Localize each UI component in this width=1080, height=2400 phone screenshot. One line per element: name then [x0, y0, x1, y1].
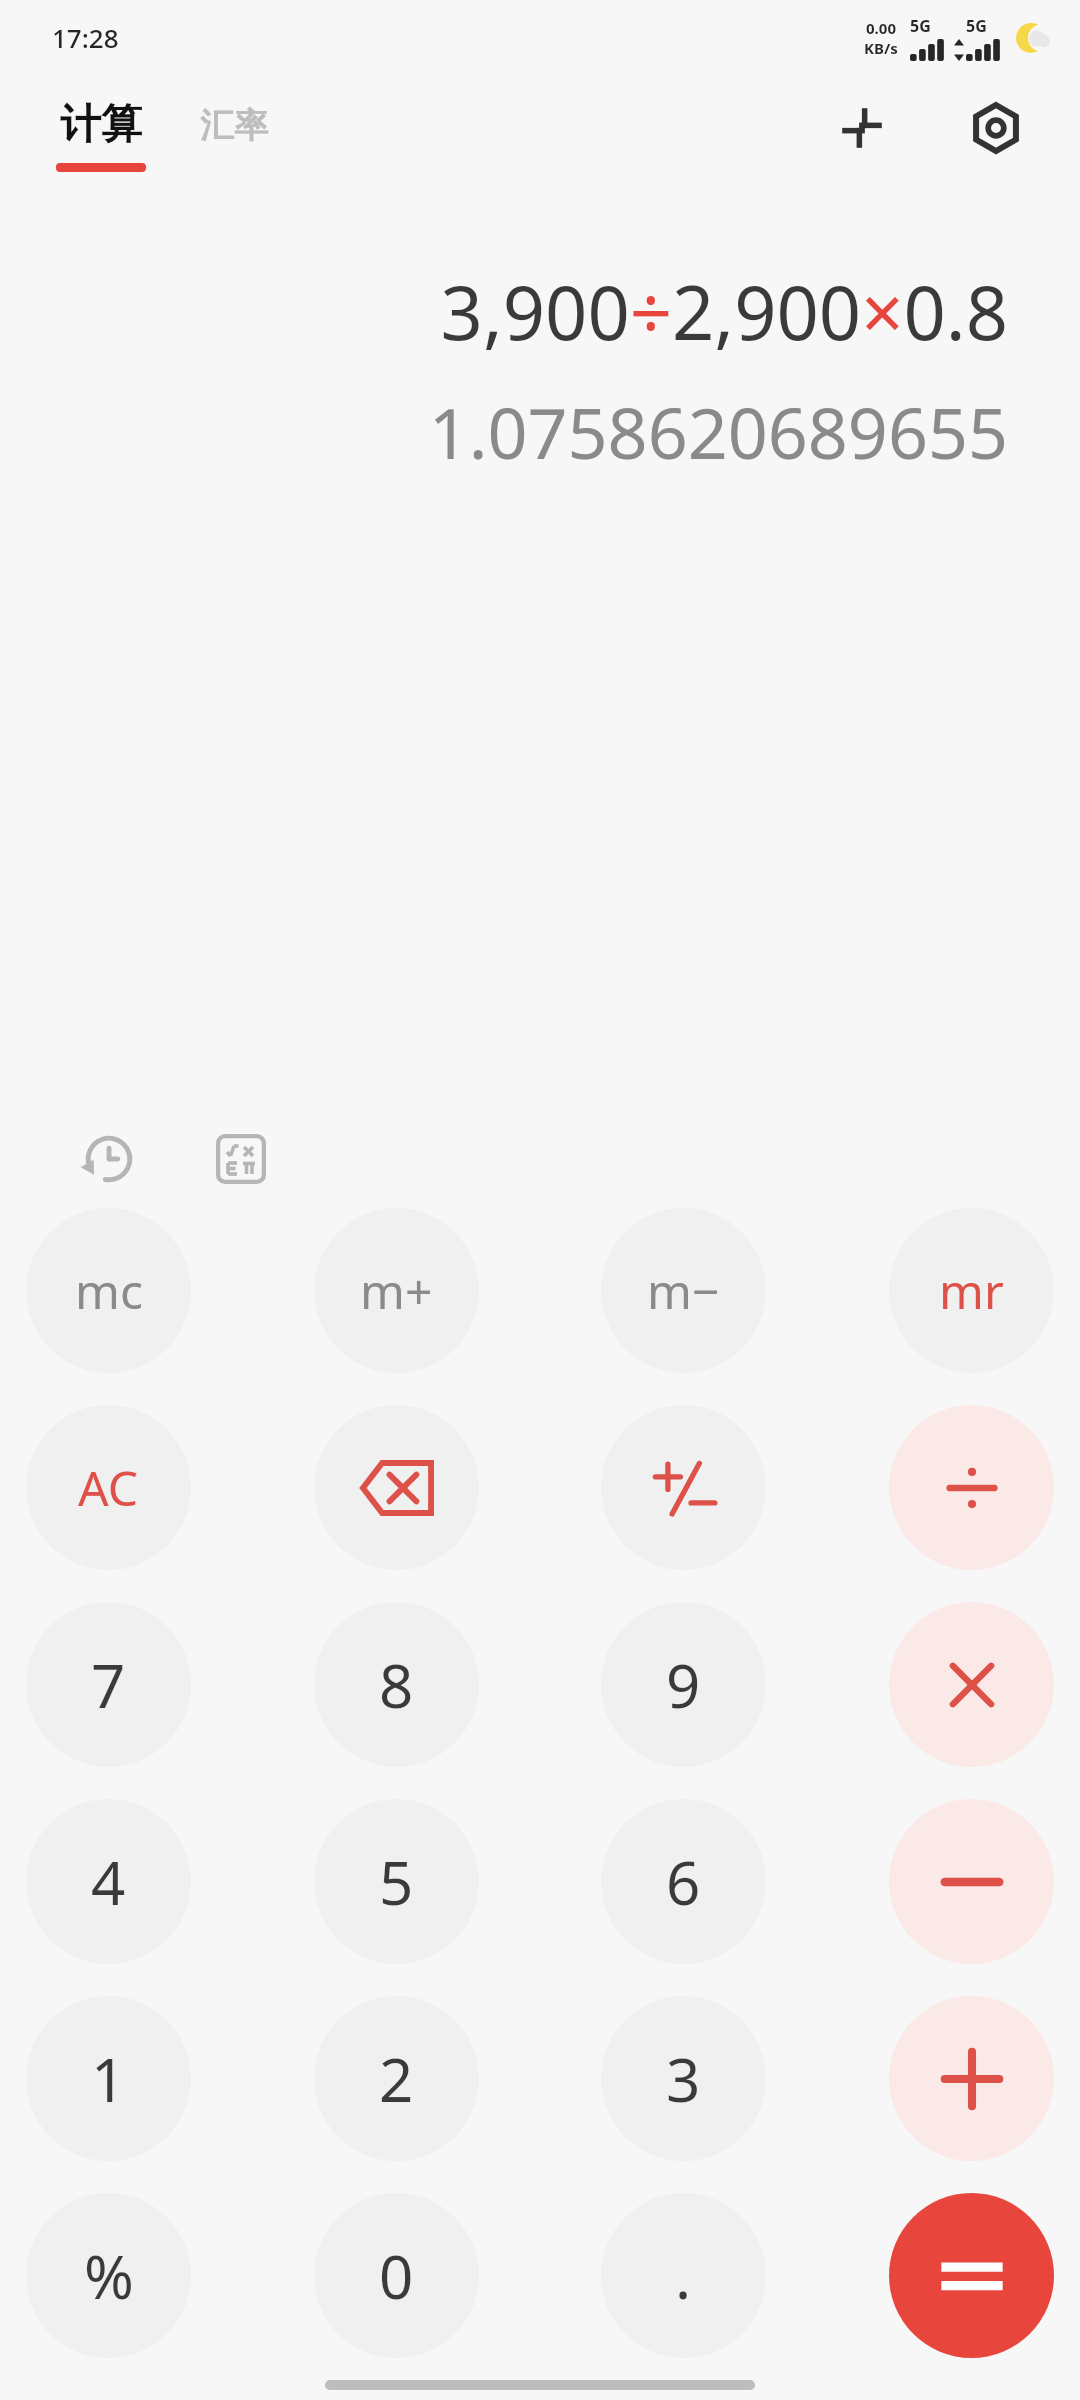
staticText: 5	[379, 1841, 414, 1923]
button[interactable]: Backspace	[314, 1405, 479, 1570]
button[interactable]: Minus	[889, 1799, 1054, 1964]
button[interactable]: 计算	[56, 99, 146, 172]
button[interactable]: 4	[26, 1799, 191, 1964]
button[interactable]: 1	[26, 1996, 191, 2161]
button[interactable]: m+	[314, 1208, 479, 1373]
staticText: 3	[666, 2038, 701, 2120]
button[interactable]: 2	[314, 1996, 479, 2161]
button[interactable]: mc	[26, 1208, 191, 1373]
staticText: 1	[91, 2038, 126, 2120]
button[interactable]: History	[72, 1122, 146, 1196]
staticText: 0	[379, 2235, 414, 2317]
staticText: mc	[75, 1258, 143, 1323]
button[interactable]: Scientific	[204, 1122, 278, 1196]
button[interactable]: 5	[314, 1799, 479, 1964]
staticText: 8	[379, 1644, 414, 1726]
button[interactable]: m−	[601, 1208, 766, 1373]
button[interactable]: mr	[889, 1208, 1054, 1373]
button[interactable]: Plus	[889, 1996, 1054, 2161]
staticText: KB/s	[864, 38, 898, 58]
button[interactable]: 0	[314, 2193, 479, 2358]
button[interactable]: Collapse	[826, 92, 898, 164]
staticText: m−	[647, 1258, 720, 1323]
staticText: 9	[666, 1644, 701, 1726]
button[interactable]: .	[601, 2193, 766, 2358]
button[interactable]	[601, 1405, 766, 1570]
staticText: 3,900÷2,900×0.8	[440, 261, 1008, 362]
staticText: 7	[91, 1644, 126, 1726]
staticText: 6	[666, 1841, 701, 1923]
staticText: 5G	[910, 15, 931, 37]
button[interactable]: Settings	[960, 92, 1032, 164]
staticText: m+	[360, 1258, 433, 1323]
staticText: 2	[379, 2038, 414, 2120]
button[interactable]: 6	[601, 1799, 766, 1964]
staticText: 4	[91, 1841, 126, 1923]
button[interactable]: AC	[26, 1405, 191, 1570]
button[interactable]: Equals	[889, 2193, 1054, 2358]
staticText: AC	[78, 1455, 139, 1520]
staticText: 17:28	[52, 20, 119, 55]
staticText: .	[675, 2235, 692, 2317]
staticText: 计算	[60, 99, 142, 151]
button[interactable]: 7	[26, 1602, 191, 1767]
button[interactable]: Divide	[889, 1405, 1054, 1570]
staticText: 汇率	[200, 104, 268, 147]
staticText: 0.00	[866, 18, 896, 38]
button[interactable]: Multiply	[889, 1602, 1054, 1767]
button[interactable]: 3	[601, 1996, 766, 2161]
staticText: 5G	[966, 15, 987, 37]
button[interactable]: 9	[601, 1602, 766, 1767]
staticText: 1.0758620689655	[428, 384, 1008, 479]
button[interactable]: 汇率	[200, 104, 268, 168]
staticText: mr	[939, 1258, 1004, 1323]
button[interactable]: 8	[314, 1602, 479, 1767]
staticText: %	[84, 2235, 134, 2317]
button[interactable]: %	[26, 2193, 191, 2358]
